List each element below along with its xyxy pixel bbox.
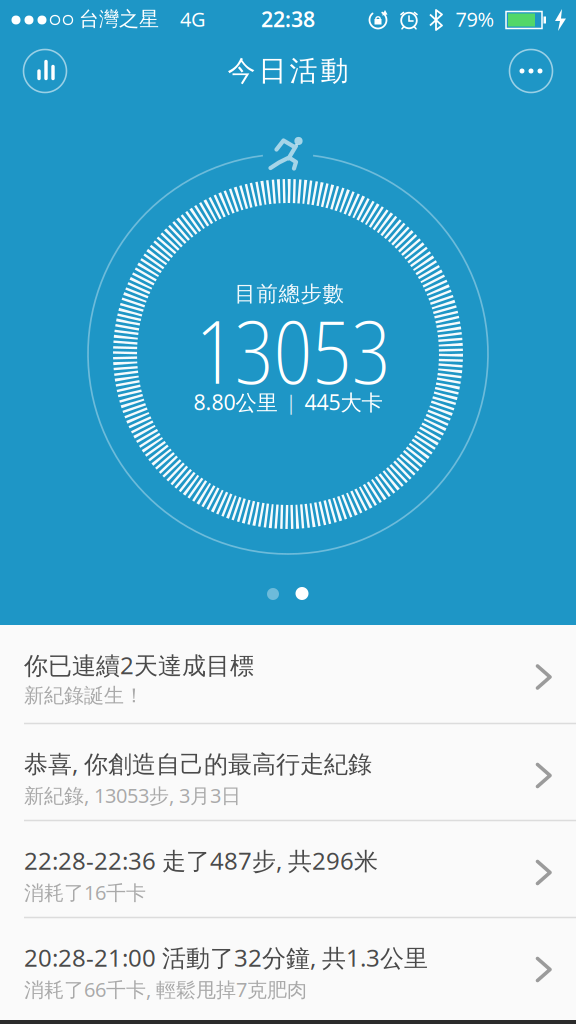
staticText: 消耗了16千卡 (24, 879, 146, 905)
staticText: 79% (455, 6, 494, 32)
button[interactable]: 22:28-22:36 走了487步, 共296米 (0, 820, 576, 917)
button[interactable] (23, 49, 67, 93)
button[interactable]: 20:28-21:00 活動了32分鐘, 共1.3公里 (0, 917, 576, 1014)
staticText: 新紀錄, 13053步, 3月3日 (24, 782, 241, 808)
staticText: 台灣之星 (79, 7, 159, 31)
staticText: 20:28-21:00 活動了32分鐘, 共1.3公里 (24, 941, 428, 973)
staticText: 消耗了66千卡, 輕鬆甩掉7克肥肉 (24, 976, 307, 1002)
staticText: 445大卡 (304, 388, 382, 416)
button[interactable]: 你已連續2天達成目標 (0, 625, 576, 722)
staticText: 4G (180, 6, 206, 32)
staticText: 你已連續2天達成目標 (24, 649, 254, 681)
staticText: 13053 (195, 291, 390, 409)
staticText: 今日活動 (227, 54, 348, 88)
staticText: | (285, 389, 296, 415)
staticText: 新紀錄誕生！ (24, 683, 144, 708)
button[interactable]: 恭喜, 你創造自己的最高行走紀錄 (0, 723, 576, 820)
staticText: 22:38 (261, 5, 315, 33)
button[interactable] (509, 49, 553, 93)
staticText: 22:28-22:36 走了487步, 共296米 (24, 844, 378, 876)
staticText: 目前總步數 (234, 281, 343, 307)
staticText: 8.80公里 (193, 388, 277, 416)
staticText: 恭喜, 你創造自己的最高行走紀錄 (24, 747, 372, 779)
